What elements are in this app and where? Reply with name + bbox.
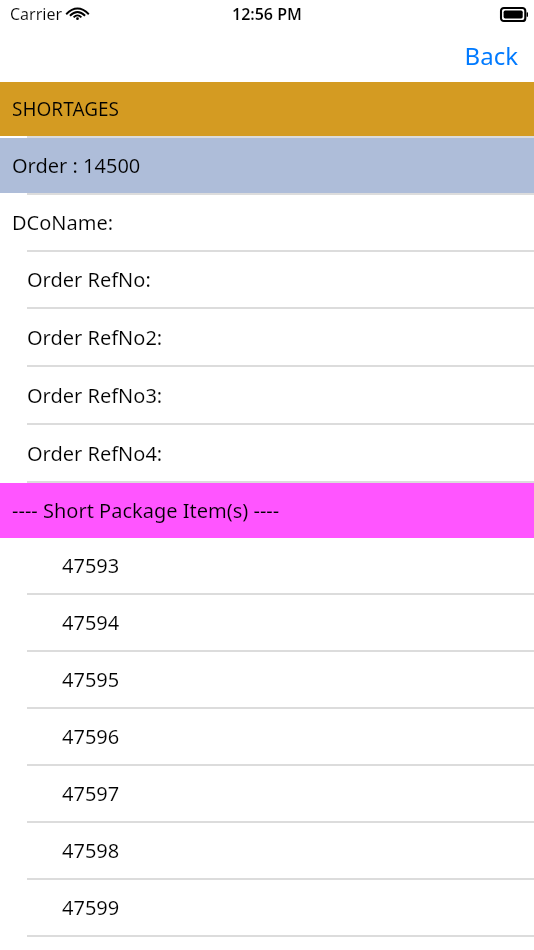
- button[interactable]: Order RefNo:: [0, 252, 534, 307]
- button[interactable]: 47599: [0, 880, 534, 935]
- staticText: Back: [464, 39, 518, 72]
- staticText: Carrier: [10, 3, 63, 25]
- staticText: Order RefNo4:: [27, 440, 163, 467]
- staticText: Order : 14500: [12, 152, 141, 179]
- staticText: Order RefNo:: [27, 266, 151, 293]
- button[interactable]: SHORTAGES: [0, 82, 534, 136]
- button[interactable]: 47593: [0, 538, 534, 593]
- button[interactable]: Order RefNo2:: [0, 309, 534, 365]
- staticText: 12:56 PM: [232, 3, 302, 25]
- button[interactable]: Order : 14500: [0, 138, 534, 193]
- button[interactable]: DCoName:: [0, 195, 534, 250]
- staticText: 47599: [62, 894, 120, 921]
- button[interactable]: Order RefNo3:: [0, 367, 534, 423]
- button[interactable]: 47597: [0, 766, 534, 821]
- staticText: 47594: [62, 609, 120, 636]
- staticText: 47593: [62, 552, 120, 579]
- button[interactable]: ---- Short Package Item(s) ----: [0, 483, 534, 538]
- staticText: 47595: [62, 666, 120, 693]
- staticText: Order RefNo3:: [27, 382, 163, 409]
- button[interactable]: Back: [456, 33, 526, 78]
- staticText: DCoName:: [12, 209, 114, 236]
- staticText: SHORTAGES: [12, 96, 119, 122]
- button[interactable]: 47594: [0, 595, 534, 650]
- staticText: ---- Short Package Item(s) ----: [12, 497, 280, 524]
- button[interactable]: 47598: [0, 823, 534, 878]
- button[interactable]: 47596: [0, 709, 534, 764]
- staticText: 47597: [62, 780, 120, 807]
- button[interactable]: 47595: [0, 652, 534, 707]
- staticText: 47598: [62, 837, 120, 864]
- button[interactable]: Order RefNo4:: [0, 425, 534, 481]
- staticText: 47596: [62, 723, 120, 750]
- staticText: Order RefNo2:: [27, 324, 163, 351]
